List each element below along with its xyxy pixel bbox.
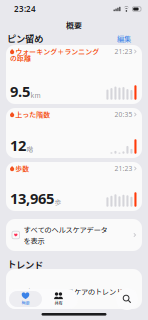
staticText: ピン留め <box>7 32 43 45</box>
staticText: 歩数 <box>15 163 29 173</box>
staticText: すべてのヘルスケアのトレンド <box>25 286 123 297</box>
staticText: 20:35 <box>114 110 132 119</box>
staticText: 12 <box>10 135 26 155</box>
staticText: 21:23 <box>114 47 132 56</box>
staticText: 概要 <box>66 19 82 31</box>
button[interactable]: 上った階数 <box>6 108 142 158</box>
button[interactable]: 編集 <box>117 33 131 44</box>
button[interactable]: すべてのヘルスケアデータ <box>6 219 142 251</box>
staticText: 13,965 <box>10 188 54 208</box>
button[interactable]: 検索 <box>116 288 138 310</box>
staticText: 23:24 <box>14 4 36 14</box>
staticText: 階 <box>27 144 34 154</box>
staticText: すべてのヘルスケアデータ <box>24 224 108 235</box>
staticText: 21:23 <box>114 164 132 173</box>
button[interactable]: ウォーキング＋ランニング <box>6 45 142 104</box>
staticText: の距離 <box>10 53 31 63</box>
staticText: km <box>31 90 41 100</box>
staticText: 上った階数 <box>15 109 50 119</box>
staticText: を表示 <box>24 235 45 246</box>
staticText: 9.5 <box>10 81 30 101</box>
staticText: トレンド <box>7 258 43 271</box>
staticText: 歩 <box>55 197 62 207</box>
button[interactable]: 歩数 <box>6 162 142 211</box>
button[interactable]: 概要 <box>9 291 42 307</box>
button[interactable]: 共有 <box>42 291 75 307</box>
staticText: 概要 <box>21 299 29 306</box>
staticText: 共有 <box>54 300 62 306</box>
staticText: 編集 <box>117 33 131 44</box>
staticText: ウォーキング＋ランニング <box>15 46 99 56</box>
